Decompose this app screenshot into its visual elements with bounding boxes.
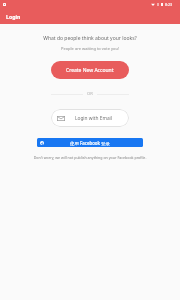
staticText: Don't worry, we will not publish anythin… xyxy=(0,155,180,160)
staticText: Create New Account xyxy=(66,67,114,74)
button[interactable]: Create New Account xyxy=(51,61,129,79)
staticText: Login with Email xyxy=(75,115,113,122)
staticText: Login xyxy=(6,13,21,20)
other: Notification xyxy=(3,3,6,6)
staticText: 使用 Facebook 登录 xyxy=(70,140,110,146)
button[interactable]: Login with Email xyxy=(51,109,129,127)
button[interactable]: 使用 Facebook 登录 xyxy=(37,138,143,147)
staticText: What do people think about your looks? xyxy=(0,35,180,42)
staticText: People are waiting to vote you! xyxy=(0,46,180,51)
staticText: OR xyxy=(87,91,93,97)
staticText: 8:23 xyxy=(165,2,173,7)
